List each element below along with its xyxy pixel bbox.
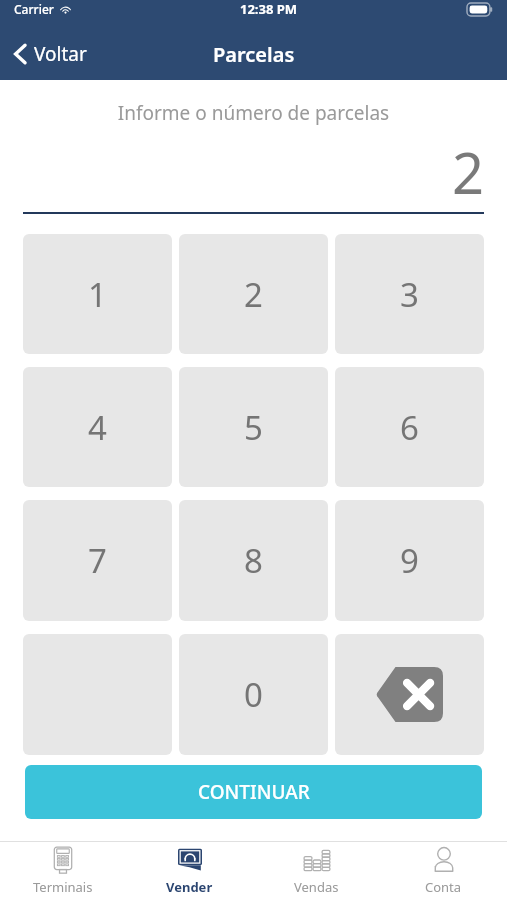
staticText: 4 <box>88 405 107 450</box>
button[interactable]: Conta <box>380 842 507 900</box>
staticText: 12:38 PM <box>240 0 298 18</box>
staticText: 7 <box>88 538 107 583</box>
button[interactable]: 6 <box>335 367 484 487</box>
button[interactable]: 1 <box>23 234 172 354</box>
staticText: Informe o número de parcelas <box>0 100 507 126</box>
button[interactable]: 8 <box>179 500 328 621</box>
staticText: 0 <box>244 672 263 717</box>
button[interactable]: Voltar <box>0 35 101 73</box>
button[interactable]: 3 <box>335 234 484 354</box>
staticText: 5 <box>244 405 263 450</box>
button[interactable]: Backspace <box>335 634 484 755</box>
staticText: Vender <box>166 878 213 896</box>
staticText: 6 <box>400 405 419 450</box>
staticText: 8 <box>244 538 263 583</box>
button[interactable]: Terminais <box>0 842 126 900</box>
staticText: 3 <box>400 272 419 317</box>
button[interactable]: 5 <box>179 367 328 487</box>
staticText: Parcelas <box>213 41 295 68</box>
button[interactable]: Vender <box>126 842 253 900</box>
staticText: 2 <box>244 272 263 317</box>
staticText: Carrier <box>14 1 54 17</box>
button[interactable]: 7 <box>23 500 172 621</box>
staticText: Conta <box>425 878 462 896</box>
staticText: Terminais <box>33 878 93 896</box>
staticText: Vendas <box>294 878 339 896</box>
button[interactable]: CONTINUAR <box>25 765 482 819</box>
staticText: 2 <box>23 134 484 210</box>
staticText: Voltar <box>34 41 87 67</box>
button[interactable]: 0 <box>179 634 328 755</box>
staticText: CONTINUAR <box>198 779 310 805</box>
button[interactable]: 2 <box>179 234 328 354</box>
button[interactable]: Vendas <box>253 842 380 900</box>
staticText: 9 <box>400 538 419 583</box>
button[interactable]: 9 <box>335 500 484 621</box>
staticText: 1 <box>88 272 107 317</box>
button[interactable]: 4 <box>23 367 172 487</box>
